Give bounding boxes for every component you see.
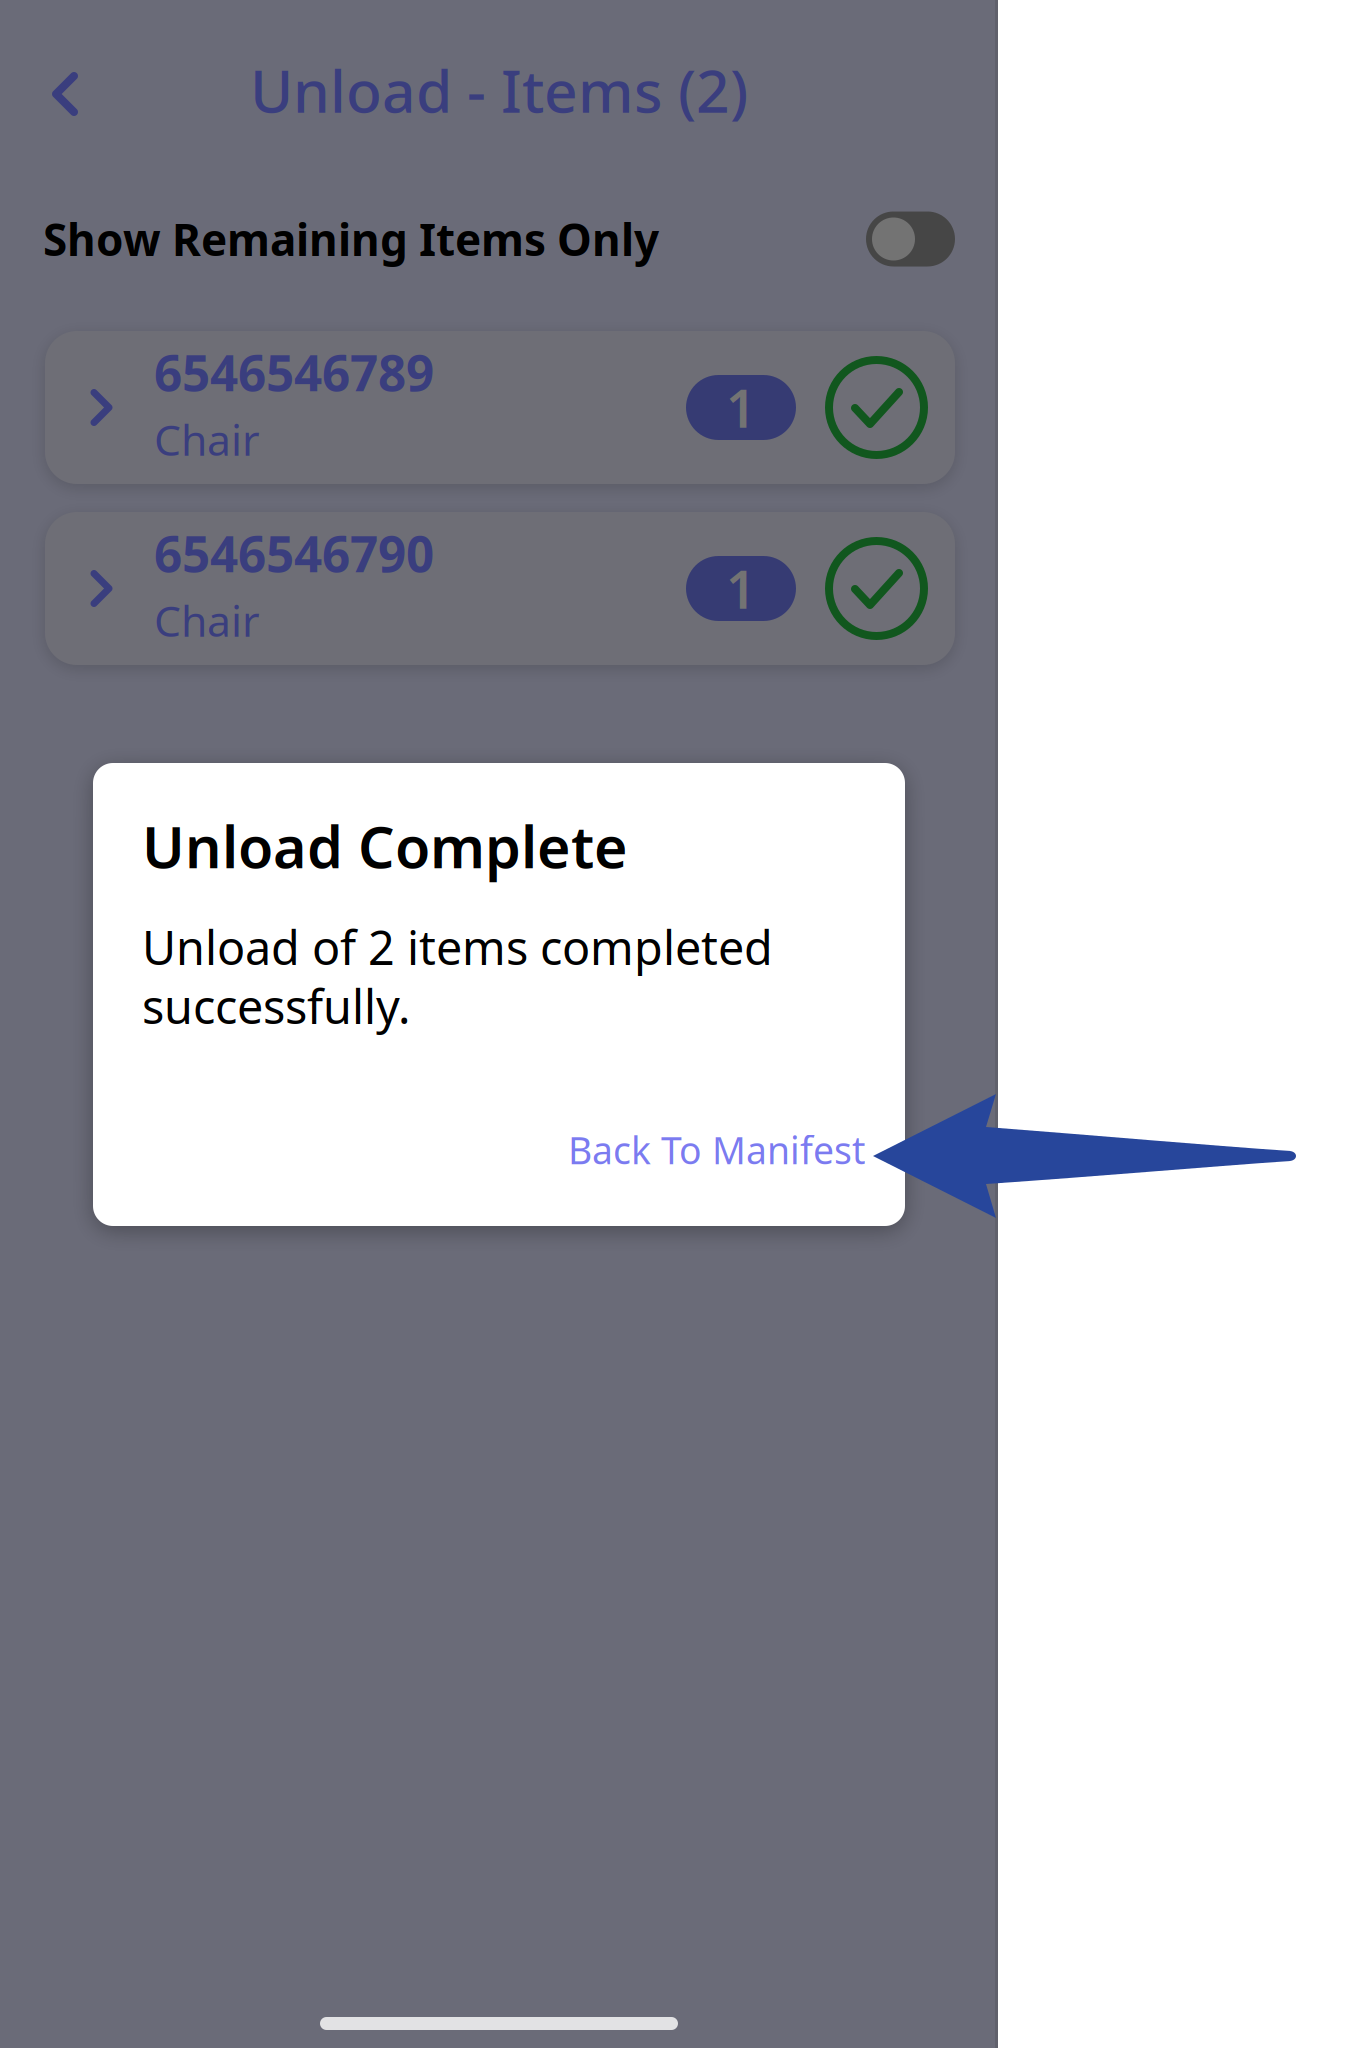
staticText: Chair [154,411,260,468]
button[interactable]: Back To Manifest [548,1109,885,1191]
staticText: 1 [726,554,756,623]
staticText: Chair [154,592,260,649]
button[interactable]: Show Remaining Items Only [0,194,998,284]
button[interactable]: 6546546789 [45,331,955,484]
staticText: 6546546789 [154,339,434,405]
staticText: Unload - Items (2) [250,51,748,129]
staticText: successfully. [142,975,411,1037]
staticText: Back To Manifest [568,1125,865,1175]
staticText: 1 [726,373,756,442]
staticText: Show Remaining Items Only [43,210,659,268]
staticText: 6546546790 [154,520,434,586]
button[interactable]: Back [28,48,102,140]
staticText: Unload of 2 items completed [142,916,773,978]
button[interactable]: 6546546790 [45,512,955,665]
staticText: Unload Complete [142,808,628,884]
